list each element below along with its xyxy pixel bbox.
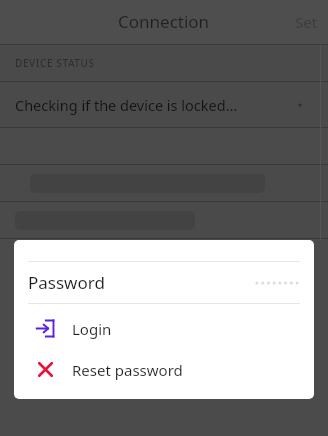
staticText: Connection (118, 10, 210, 33)
staticText: Set (295, 12, 318, 32)
staticText: DEVICE STATUS (15, 56, 95, 70)
button[interactable]: Login (14, 308, 314, 349)
staticText: Password (28, 271, 105, 294)
staticText: Reset password (72, 360, 183, 380)
button[interactable]: Checking if the device is locked… (0, 82, 328, 127)
staticText: Login (72, 319, 112, 339)
staticText: Checking if the device is locked… (15, 95, 238, 115)
button[interactable]: Reset password (14, 349, 314, 390)
